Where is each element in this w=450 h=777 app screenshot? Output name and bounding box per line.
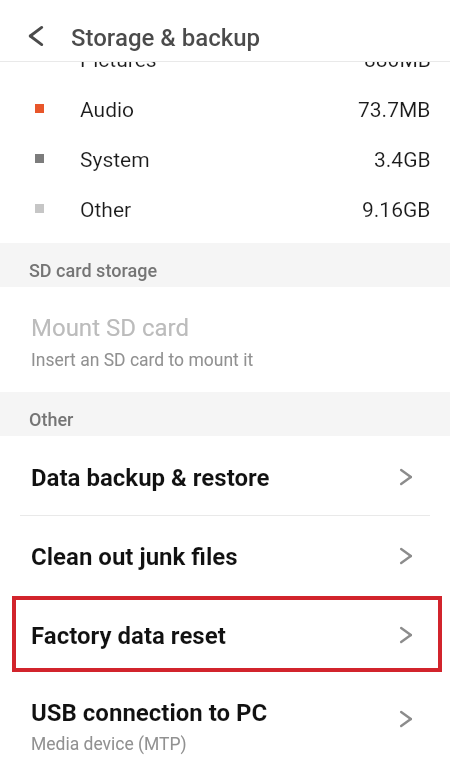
- staticText: Other: [29, 409, 74, 430]
- staticText: Data backup & restore: [31, 464, 270, 492]
- staticText: SD card storage: [29, 260, 158, 281]
- staticText: 9.16GB: [362, 198, 431, 223]
- button[interactable]: Data backup & restore: [0, 436, 450, 515]
- staticText: Media device (MTP): [31, 734, 187, 755]
- staticText: Storage & backup: [71, 24, 261, 52]
- staticText: USB connection to PC: [31, 699, 268, 727]
- button[interactable]: Back: [0, 0, 62, 62]
- staticText: System: [80, 148, 150, 173]
- button[interactable]: Other: [0, 185, 450, 235]
- staticText: Insert an SD card to mount it: [31, 350, 254, 371]
- staticText: Audio: [80, 98, 135, 123]
- button[interactable]: Audio: [0, 85, 450, 135]
- staticText: Other: [80, 198, 132, 223]
- button[interactable]: System: [0, 135, 450, 185]
- button[interactable]: Factory data reset: [0, 596, 450, 672]
- staticText: Pictures: [80, 62, 157, 73]
- button[interactable]: Clean out junk files: [0, 516, 450, 596]
- staticText: 73.7MB: [358, 98, 431, 123]
- staticText: Clean out junk files: [31, 543, 238, 571]
- button[interactable]: Pictures: [0, 62, 450, 85]
- staticText: 3.4GB: [374, 148, 431, 173]
- button[interactable]: Mount SD card: [0, 287, 450, 392]
- staticText: Factory data reset: [31, 622, 226, 650]
- staticText: 880MB: [364, 62, 431, 73]
- staticText: Mount SD card: [31, 314, 189, 342]
- button[interactable]: USB connection to PC: [0, 672, 450, 750]
